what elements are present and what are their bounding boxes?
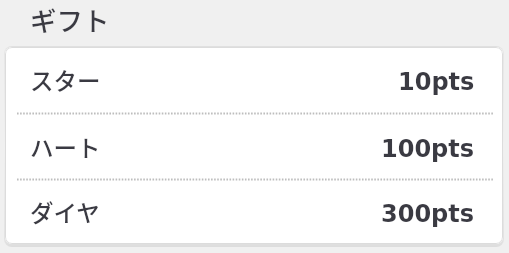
- staticText: スター: [30, 63, 101, 97]
- staticText: ハート: [30, 130, 101, 164]
- staticText: ダイヤ: [30, 195, 100, 229]
- button[interactable]: ダイヤ: [5, 180, 503, 244]
- staticText: 100pts: [381, 135, 475, 163]
- button[interactable]: ハート: [5, 114, 503, 179]
- staticText: 300pts: [381, 200, 475, 228]
- staticText: ギフト: [30, 0, 110, 38]
- staticText: 10pts: [398, 68, 475, 96]
- button[interactable]: スター: [5, 47, 503, 113]
